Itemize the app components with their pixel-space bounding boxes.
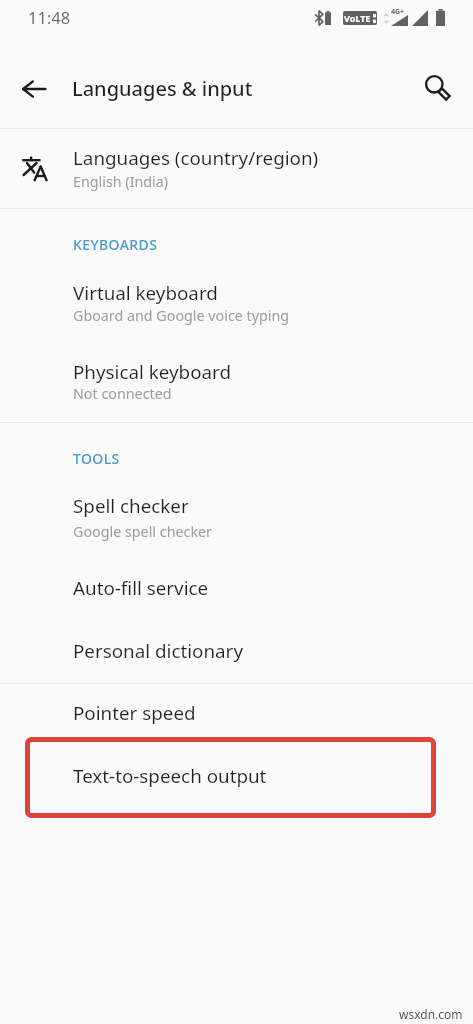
staticText: Physical keyboard bbox=[73, 359, 232, 385]
button[interactable]: Physical keyboard bbox=[0, 344, 473, 418]
staticText: Virtual keyboard bbox=[73, 280, 218, 306]
staticText: Personal dictionary bbox=[73, 638, 243, 664]
staticText: Languages (country/region) bbox=[73, 145, 319, 171]
button[interactable]: Search bbox=[412, 63, 458, 109]
button[interactable]: Pointer speed bbox=[0, 684, 473, 732]
staticText: Spell checker bbox=[73, 493, 189, 519]
staticText: 4G+ bbox=[391, 7, 405, 17]
staticText: Gboard and Google voice typing bbox=[73, 306, 290, 325]
staticText: Auto-fill service bbox=[73, 575, 209, 601]
button[interactable]: Personal dictionary bbox=[0, 622, 473, 670]
button[interactable]: Auto-fill service bbox=[0, 559, 473, 607]
staticText: Google spell checker bbox=[73, 522, 212, 541]
button[interactable]: Languages (country/region) bbox=[0, 128, 473, 208]
staticText: Pointer speed bbox=[73, 700, 196, 726]
button[interactable]: Spell checker bbox=[0, 478, 473, 556]
staticText: Text-to-speech output bbox=[73, 763, 267, 789]
staticText: 11:48 bbox=[28, 6, 71, 28]
button[interactable]: Back bbox=[12, 66, 56, 110]
staticText: VoLTE bbox=[344, 12, 371, 24]
button[interactable]: Text-to-speech output bbox=[0, 747, 473, 795]
staticText: English (India) bbox=[73, 172, 169, 191]
staticText: KEYBOARDS bbox=[73, 235, 158, 254]
staticText: TOOLS bbox=[73, 449, 120, 468]
button[interactable]: Virtual keyboard bbox=[0, 265, 473, 340]
staticText: wsxdn.com bbox=[399, 1006, 463, 1022]
staticText: Not connected bbox=[73, 384, 172, 403]
staticText: Languages & input bbox=[72, 75, 253, 102]
